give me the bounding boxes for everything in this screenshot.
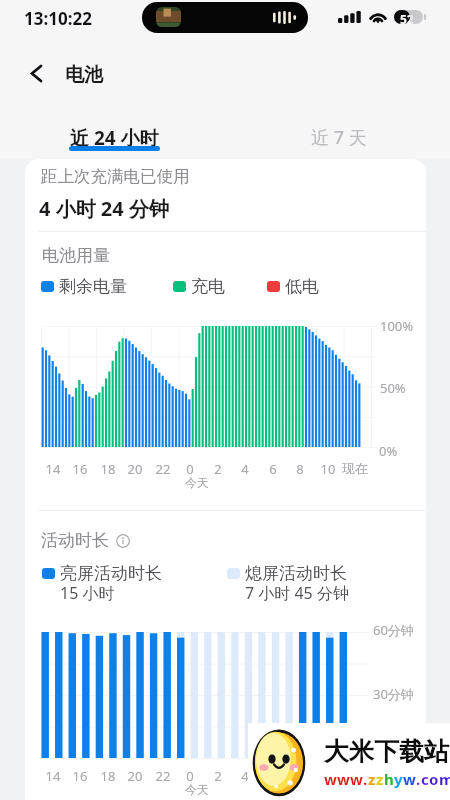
staticText: 60分钟 [373,621,414,639]
staticText: 30分钟 [373,685,414,703]
staticText: 20 [115,460,155,478]
staticText: c [421,769,429,789]
button[interactable]: 近 7 天 [286,116,391,150]
staticText: w [324,769,337,789]
staticText: h [384,769,394,789]
staticText: 距上次充满电已使用 [41,166,190,187]
staticText: 亮屏活动时长 [60,563,162,584]
staticText: 14 [33,767,73,785]
staticText: 活动时长 [41,530,109,551]
staticText: 现在 [335,767,375,783]
staticText: 充电 [191,276,225,297]
staticText: 电池用量 [42,245,110,266]
button[interactable]: 近 24 小时 [48,116,180,158]
staticText: 0 [170,460,210,478]
staticText: 2 [198,460,238,478]
staticText: 6 [253,767,293,785]
staticText: 20 [115,767,155,785]
staticText: 15 小时 [60,582,115,604]
staticText: w [350,769,363,789]
staticText: 100% [380,317,414,335]
button[interactable]: Back [18,55,54,91]
staticText: 22 [143,767,183,785]
staticText: 现在 [335,460,375,476]
staticText: z [376,769,384,789]
staticText: 熄屏活动时长 [245,563,347,584]
staticText: 22 [143,460,183,478]
staticText: 50% [380,379,406,397]
staticText: 今天 [177,782,217,797]
staticText: 52 [400,11,410,24]
staticText: 6 [253,460,293,478]
staticText: o [429,769,439,789]
staticText: 10 [308,460,348,478]
staticText: 2 [198,767,238,785]
staticText: 18 [88,767,128,785]
staticText: 52 [410,11,414,24]
staticText: 16 [60,460,100,478]
staticText: 0 [170,767,210,785]
staticText: 电池 [65,63,103,87]
staticText: 7 小时 45 分钟 [245,582,349,604]
staticText: 低电 [285,276,319,297]
staticText: 近 7 天 [311,125,367,150]
staticText: 16 [60,767,100,785]
staticText: 大米下载站 [324,736,449,767]
staticText: w [337,769,350,789]
staticText: 10 [308,767,348,785]
staticText: 13:10:22 [24,7,92,30]
staticText: w [403,769,416,789]
staticText: 8 [280,767,320,785]
staticText: 18 [88,460,128,478]
staticText: y [394,769,403,789]
staticText: 4 小时 24 分钟 [39,195,169,222]
staticText: 14 [33,460,73,478]
staticText: 今天 [177,475,217,490]
staticText: 4 [225,460,265,478]
staticText: z [368,769,376,789]
staticText: m [439,769,450,789]
staticText: . [416,769,421,789]
staticText: 8 [280,460,320,478]
staticText: 近 24 小时 [70,125,159,151]
staticText: 4 [225,767,265,785]
staticText: . [363,769,368,789]
staticText: 剩余电量 [59,276,127,297]
staticText: 0% [379,442,398,460]
